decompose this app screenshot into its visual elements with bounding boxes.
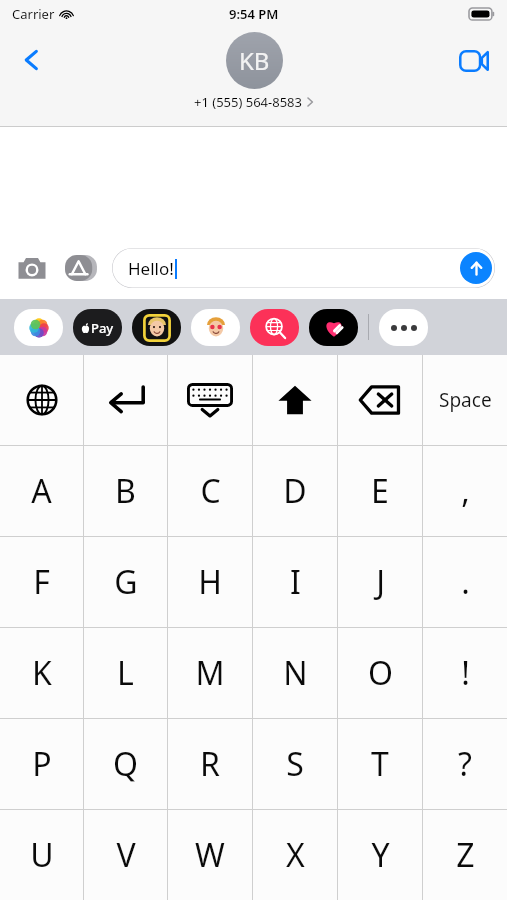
staticText: ,: [461, 469, 470, 513]
staticText: X: [286, 833, 305, 877]
button[interactable]: V: [84, 810, 167, 900]
staticText: KB: [239, 44, 270, 77]
staticText: Q: [113, 742, 138, 786]
button[interactable]: Delete: [338, 355, 422, 445]
button[interactable]: E: [338, 446, 422, 536]
button[interactable]: ,: [423, 446, 507, 536]
button[interactable]: Y: [338, 810, 422, 900]
button[interactable]: F: [0, 537, 83, 627]
button[interactable]: Shift: [253, 355, 337, 445]
button[interactable]: Digital Touch: [309, 309, 358, 346]
button[interactable]: S: [253, 719, 337, 809]
button[interactable]: R: [168, 719, 252, 809]
button[interactable]: Images: [250, 309, 299, 346]
button[interactable]: N: [253, 628, 337, 718]
button[interactable]: Camera: [12, 248, 52, 288]
button[interactable]: B: [84, 446, 167, 536]
button[interactable]: T: [338, 719, 422, 809]
button[interactable]: Hello!: [112, 248, 495, 288]
button[interactable]: G: [84, 537, 167, 627]
staticText: W: [195, 833, 225, 877]
button[interactable]: Photos: [14, 309, 63, 346]
staticText: Y: [371, 833, 390, 877]
staticText: P: [32, 742, 52, 786]
button[interactable]: M: [168, 628, 252, 718]
button[interactable]: Send: [460, 252, 492, 284]
staticText: E: [371, 469, 389, 513]
button[interactable]: Q: [84, 719, 167, 809]
staticText: .: [461, 560, 470, 604]
button[interactable]: ?: [423, 719, 507, 809]
staticText: M: [195, 651, 225, 695]
button[interactable]: FaceTime video call: [451, 38, 497, 84]
button[interactable]: KB: [194, 32, 314, 111]
staticText: L: [117, 651, 134, 695]
staticText: I: [290, 560, 301, 604]
button[interactable]: Back: [8, 36, 56, 84]
button[interactable]: U: [0, 810, 83, 900]
staticText: O: [368, 651, 393, 695]
staticText: S: [286, 742, 304, 786]
button[interactable]: Return: [84, 355, 167, 445]
button[interactable]: Apple Pay: [73, 309, 122, 346]
button[interactable]: C: [168, 446, 252, 536]
button[interactable]: O: [338, 628, 422, 718]
button[interactable]: Memoji: [132, 309, 181, 346]
staticText: T: [371, 742, 389, 786]
staticText: A: [31, 469, 52, 513]
staticText: Hello!: [128, 257, 174, 280]
button[interactable]: L: [84, 628, 167, 718]
button[interactable]: P: [0, 719, 83, 809]
button[interactable]: I: [253, 537, 337, 627]
staticText: Pay: [91, 319, 114, 337]
button[interactable]: A: [0, 446, 83, 536]
button[interactable]: !: [423, 628, 507, 718]
button[interactable]: H: [168, 537, 252, 627]
staticText: Z: [456, 833, 475, 877]
button[interactable]: .: [423, 537, 507, 627]
staticText: V: [116, 833, 136, 877]
button[interactable]: Change language: [0, 355, 83, 445]
staticText: U: [30, 833, 54, 877]
staticText: !: [461, 651, 470, 695]
staticText: Carrier: [12, 5, 55, 23]
staticText: C: [200, 469, 221, 513]
staticText: J: [376, 560, 385, 604]
staticText: H: [198, 560, 222, 604]
staticText: Space: [439, 387, 492, 413]
staticText: N: [283, 651, 308, 695]
staticText: 9:54 PM: [229, 5, 279, 23]
staticText: ?: [458, 742, 472, 786]
staticText: B: [115, 469, 136, 513]
staticText: G: [114, 560, 138, 604]
button[interactable]: W: [168, 810, 252, 900]
button[interactable]: K: [0, 628, 83, 718]
staticText: R: [200, 742, 220, 786]
staticText: +1 (555) 564-8583: [194, 93, 302, 111]
button[interactable]: Hide keyboard: [168, 355, 252, 445]
button[interactable]: Space: [423, 355, 507, 445]
button[interactable]: D: [253, 446, 337, 536]
button[interactable]: Z: [423, 810, 507, 900]
button[interactable]: Apps: [62, 248, 102, 288]
staticText: K: [32, 651, 52, 695]
button[interactable]: J: [338, 537, 422, 627]
button[interactable]: X: [253, 810, 337, 900]
button[interactable]: Memoji stickers: [191, 309, 240, 346]
staticText: F: [33, 560, 50, 604]
button[interactable]: More: [379, 309, 428, 346]
staticText: D: [283, 469, 307, 513]
